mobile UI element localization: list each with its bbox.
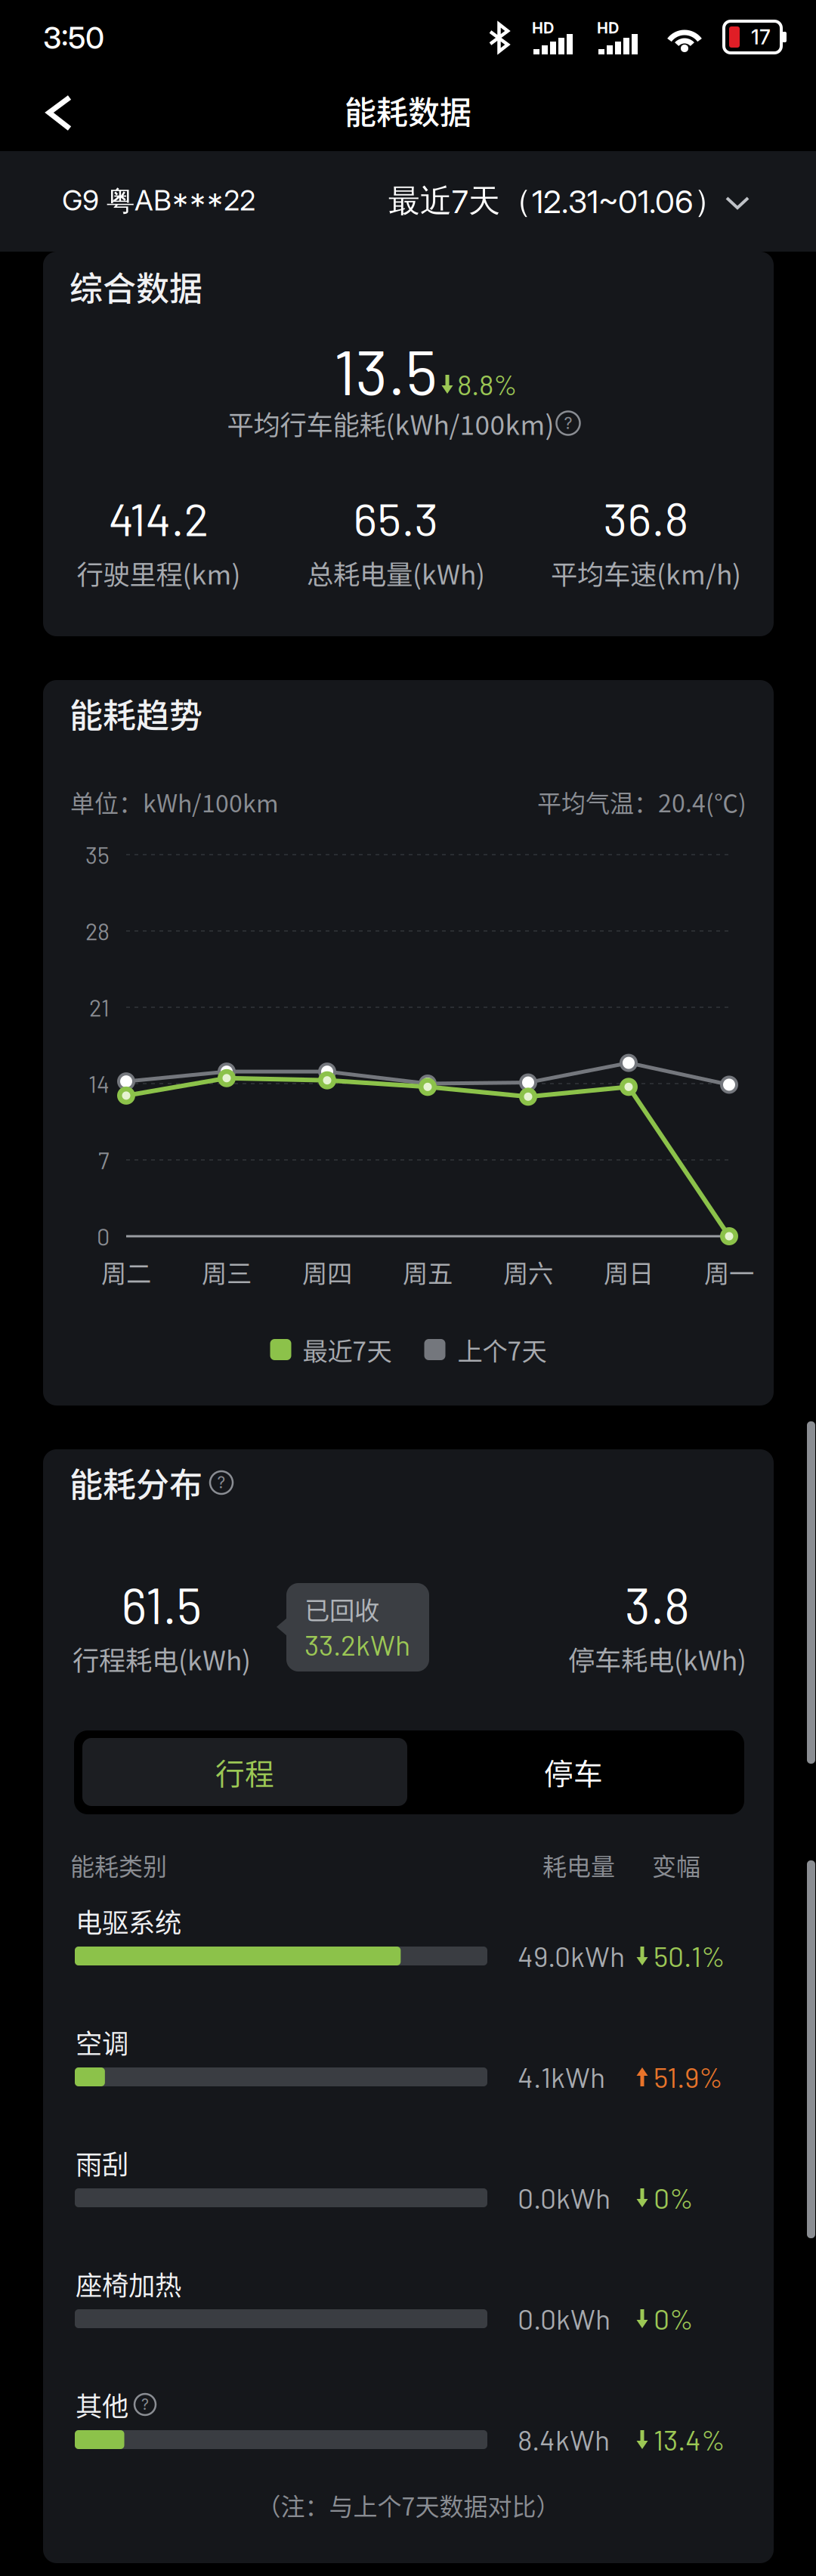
staticText: 0%	[654, 2301, 694, 2335]
staticText: 平均气温：20.4(℃)	[537, 784, 746, 819]
button[interactable]: 最近7天（12.31~01.06）	[0, 151, 816, 252]
staticText: ?	[141, 2396, 149, 2413]
staticText: 13.5	[334, 333, 437, 408]
staticText: 综合数据	[70, 262, 202, 310]
staticText: 8.4kWh	[518, 2422, 610, 2456]
staticText: 周二	[101, 1254, 151, 1290]
staticText: 61.5	[121, 1575, 202, 1634]
staticText: 能耗趋势	[70, 689, 202, 737]
staticText: HD	[597, 19, 619, 37]
staticText: HD	[532, 19, 554, 37]
staticText: 平均行车能耗(kWh/100km)	[227, 404, 554, 443]
staticText: 耗电量	[542, 1847, 615, 1882]
staticText: 最近7天	[303, 1331, 392, 1368]
staticText: 已回收	[304, 1591, 379, 1627]
staticText: 行程耗电(kWh)	[73, 1639, 251, 1678]
staticText: 21	[89, 993, 110, 1021]
staticText: 3.8	[625, 1575, 690, 1634]
staticText: 行程	[215, 1751, 274, 1793]
staticText: 停车	[544, 1751, 603, 1793]
staticText: 上个7天	[457, 1331, 547, 1368]
staticText: 13.4%	[654, 2422, 725, 2456]
staticText: 36.8	[603, 490, 689, 545]
staticText: 能耗数据	[345, 87, 471, 133]
staticText: 能耗类别	[70, 1847, 167, 1882]
staticText: 17	[751, 25, 771, 49]
staticText: 变幅	[652, 1847, 700, 1882]
staticText: 最近7天（12.31~01.06）	[388, 181, 725, 221]
staticText: G9 粤AB***22	[62, 183, 255, 219]
staticText: 周一	[704, 1254, 754, 1290]
staticText: 35	[85, 841, 110, 869]
staticText: 平均车速(km/h)	[551, 553, 741, 592]
staticText: 28	[85, 917, 110, 945]
staticText: 49.0kWh	[518, 1939, 625, 1973]
staticText: 4.1kWh	[518, 2060, 605, 2093]
staticText: 周日	[604, 1254, 654, 1290]
staticText: 33.2kWh	[304, 1627, 410, 1661]
staticText: 周五	[403, 1254, 453, 1290]
staticText: 雨刮	[76, 2143, 128, 2182]
staticText: ?	[564, 413, 572, 433]
staticText: 其他	[76, 2385, 128, 2424]
staticText: 周四	[302, 1254, 352, 1290]
staticText: 单位：kWh/100km	[70, 784, 279, 819]
staticText: ?	[217, 1473, 226, 1492]
staticText: （注：与上个7天数据对比）	[257, 2487, 560, 2522]
staticText: 周六	[503, 1254, 553, 1290]
staticText: 0	[97, 1222, 110, 1250]
staticText: 65.3	[353, 490, 439, 545]
button[interactable]: 停车	[411, 1738, 736, 1806]
staticText: 0%	[654, 2180, 694, 2214]
staticText: 总耗电量(kWh)	[307, 553, 485, 592]
staticText: 停车耗电(kWh)	[568, 1639, 746, 1678]
staticText: 414.2	[108, 490, 209, 545]
staticText: 7	[98, 1146, 110, 1174]
staticText: 3:50	[43, 19, 104, 56]
staticText: 行驶里程(km)	[77, 553, 241, 592]
staticText: 14	[88, 1070, 110, 1098]
staticText: 周三	[202, 1254, 252, 1290]
staticText: 电驱系统	[76, 1902, 181, 1940]
staticText: 51.9%	[654, 2060, 723, 2093]
staticText: 0.0kWh	[518, 2180, 610, 2214]
button[interactable]: 行程	[82, 1738, 407, 1806]
staticText: 座椅加热	[76, 2264, 181, 2303]
button[interactable]: Back	[17, 76, 100, 151]
staticText: 8.8%	[457, 367, 518, 401]
button[interactable]: G9 粤AB***22	[0, 151, 317, 204]
staticText: 0.0kWh	[518, 2301, 610, 2335]
staticText: 50.1%	[654, 1939, 725, 1973]
staticText: 能耗分布	[70, 1458, 202, 1507]
staticText: 空调	[76, 2022, 128, 2061]
